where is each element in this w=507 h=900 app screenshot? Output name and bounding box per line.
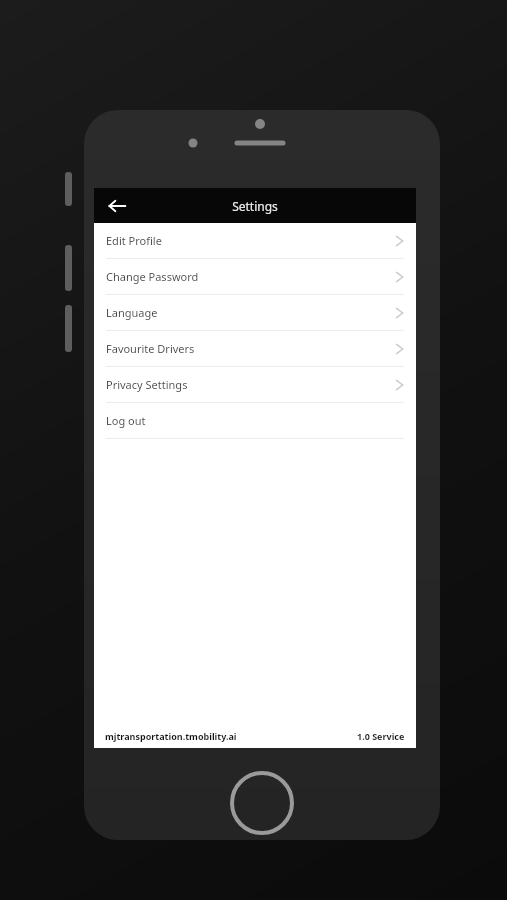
button[interactable]: Log out [106,403,404,439]
staticText: mjtransportation.tmobility.ai [105,730,237,742]
button[interactable]: Edit Profile [106,223,404,259]
staticText: Language [106,305,158,320]
staticText: Edit Profile [106,233,162,248]
button[interactable]: Favourite Drivers [106,331,404,367]
staticText: Change Password [106,269,199,284]
button[interactable]: Privacy Settings [106,367,404,403]
button[interactable]: Change Password [106,259,404,295]
staticText: Favourite Drivers [106,341,195,356]
button[interactable]: Back [100,189,134,223]
staticText: Log out [106,413,146,428]
staticText: Privacy Settings [106,377,188,392]
button[interactable]: Language [106,295,404,331]
staticText: 1.0 Service [357,730,405,742]
staticText: Settings [232,198,278,214]
